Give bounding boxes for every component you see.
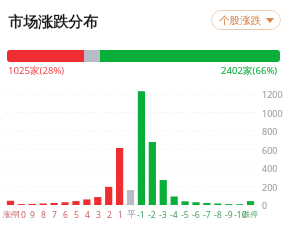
staticText: 9 (30, 209, 35, 221)
staticText: 7 (52, 209, 57, 221)
staticText: 400 (262, 162, 278, 174)
staticText: 200 (262, 181, 278, 193)
staticText: 1000 (262, 107, 283, 119)
staticText: -8 (214, 209, 222, 221)
other: Expand options (266, 18, 274, 23)
staticText: 800 (262, 125, 278, 137)
staticText: 2402家(66%) (221, 64, 278, 77)
staticText: 跌停 (243, 210, 259, 220)
staticText: -7 (203, 209, 211, 221)
staticText: -10 (234, 209, 247, 221)
staticText: 1200 (262, 88, 283, 100)
staticText: -9 (225, 209, 233, 221)
staticText: 平 (127, 209, 136, 220)
staticText: 6 (63, 209, 68, 221)
staticText: 1025家(28%) (8, 64, 65, 77)
staticText: 市场涨跌分布 (8, 13, 98, 32)
staticText: -6 (192, 209, 200, 221)
staticText: 10 (16, 209, 26, 221)
staticText: 3 (96, 209, 101, 221)
button[interactable]: 个股涨跌 (211, 10, 281, 30)
staticText: -1 (137, 209, 145, 221)
staticText: 600 (262, 144, 278, 156)
staticText: -5 (181, 209, 189, 221)
staticText: 5 (74, 209, 79, 221)
staticText: 8 (41, 209, 46, 221)
button[interactable] (7, 50, 280, 62)
staticText: -4 (170, 209, 178, 221)
staticText: 4 (85, 209, 90, 221)
staticText: 1 (118, 209, 123, 221)
staticText: 0 (262, 199, 268, 211)
staticText: 2 (107, 209, 112, 221)
staticText: 涨停 (3, 210, 19, 220)
staticText: -3 (159, 209, 167, 221)
staticText: -2 (148, 209, 156, 221)
staticText: 个股涨跌 (219, 14, 261, 27)
